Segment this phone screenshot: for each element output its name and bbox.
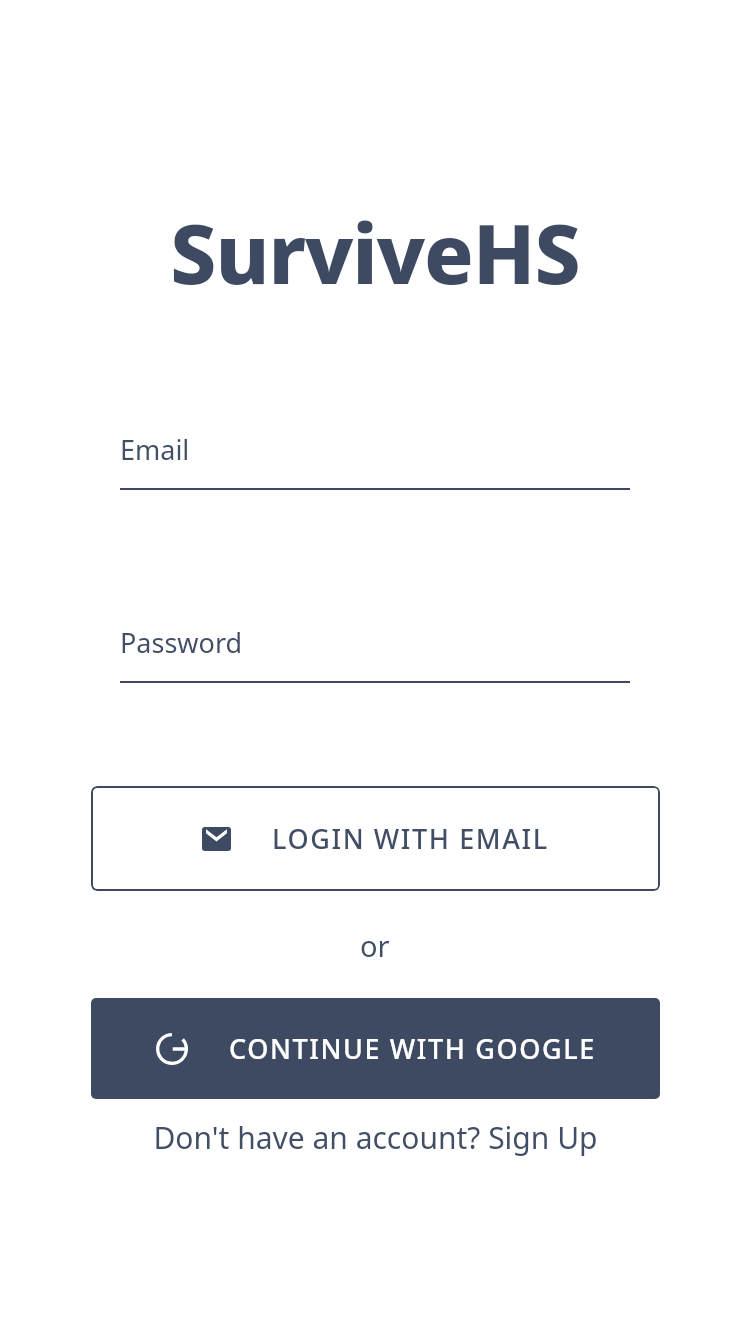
staticText: SurviveHS — [170, 196, 580, 308]
staticText: Password — [120, 624, 243, 661]
button[interactable]: CONTINUE WITH GOOGLE — [91, 998, 660, 1099]
button[interactable]: LOGIN WITH EMAIL — [91, 786, 660, 891]
staticText: or — [360, 926, 390, 965]
button[interactable]: Password — [120, 624, 630, 683]
button[interactable]: Don't have an account? Sign Up — [40, 1106, 710, 1168]
staticText: Don't have an account? Sign Up — [153, 1117, 598, 1158]
button[interactable]: Email — [120, 431, 630, 490]
staticText: Email — [120, 431, 190, 468]
staticText: CONTINUE WITH GOOGLE — [229, 1030, 596, 1067]
staticText: LOGIN WITH EMAIL — [272, 820, 549, 857]
